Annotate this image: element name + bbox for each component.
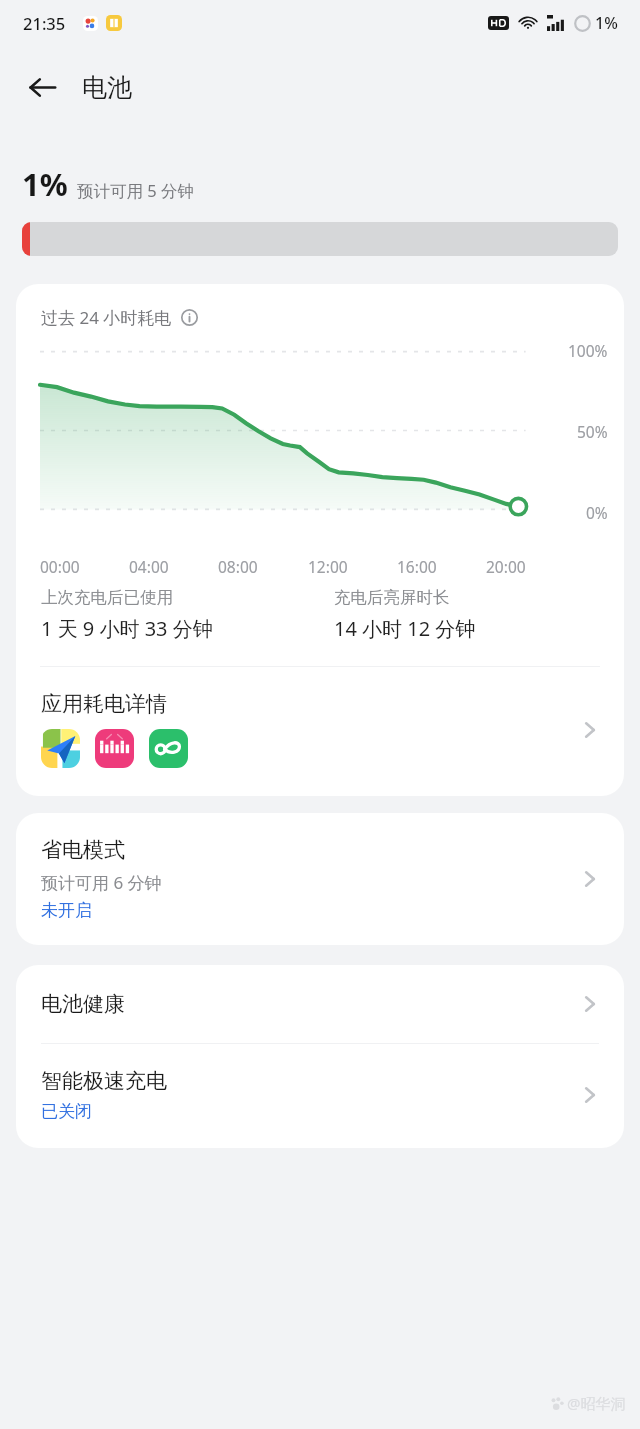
staticText: 50% xyxy=(577,421,608,442)
staticText: 过去 24 小时耗电 xyxy=(41,306,172,329)
staticText: 14 小时 12 分钟 xyxy=(334,615,476,642)
staticText: 21:35 xyxy=(23,12,66,34)
staticText: 12:00 xyxy=(308,556,368,577)
staticText: 1% xyxy=(22,163,68,205)
staticText: 预计可用 5 分钟 xyxy=(77,179,195,202)
staticText: 100% xyxy=(568,340,608,361)
staticText: 1% xyxy=(595,12,618,34)
staticText: 电池 xyxy=(82,72,132,103)
staticText: 省电模式 xyxy=(41,837,125,863)
button[interactable]: 智能极速充电 xyxy=(16,1044,624,1148)
staticText: 智能极速充电 xyxy=(41,1068,167,1094)
button[interactable]: 应用耗电详情 xyxy=(16,667,624,774)
button[interactable]: 省电模式 xyxy=(16,813,624,945)
staticText: 04:00 xyxy=(129,556,189,577)
button[interactable]: 电池健康 xyxy=(16,965,624,1043)
staticText: 电池健康 xyxy=(41,991,578,1017)
staticText: 00:00 xyxy=(40,556,100,577)
staticText: 16:00 xyxy=(397,556,457,577)
button[interactable]: Back xyxy=(16,61,68,113)
staticText: 应用耗电详情 xyxy=(41,691,167,717)
staticText: 预计可用 6 分钟 xyxy=(41,871,162,894)
staticText: 0% xyxy=(586,502,608,523)
staticText: 20:00 xyxy=(486,556,546,577)
staticText: 08:00 xyxy=(218,556,278,577)
staticText: 未开启 xyxy=(41,900,92,921)
staticText: @昭华洞 xyxy=(567,1393,626,1413)
staticText: 上次充电后已使用 xyxy=(41,587,173,608)
staticText: 1 天 9 小时 33 分钟 xyxy=(41,615,213,642)
staticText: 已关闭 xyxy=(41,1101,92,1122)
staticText: 充电后亮屏时长 xyxy=(334,587,450,608)
